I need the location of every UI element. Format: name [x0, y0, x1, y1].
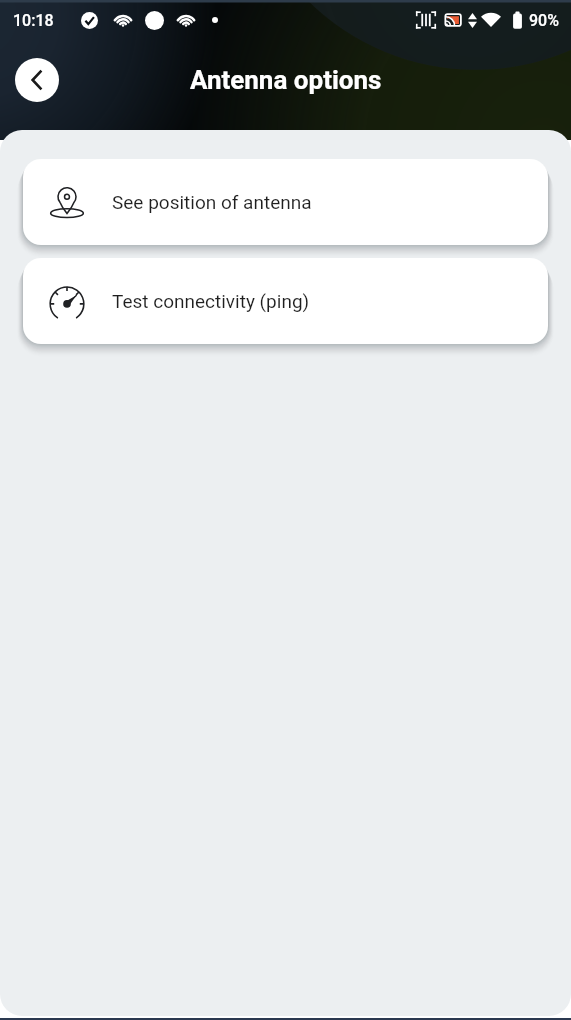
button[interactable]: Test connectivity (ping) [23, 258, 548, 344]
button[interactable]: See position of antenna [23, 159, 548, 245]
staticText: See position of antenna [112, 191, 312, 213]
staticText: Antenna options [190, 65, 382, 95]
staticText: Test connectivity (ping) [112, 290, 310, 312]
button[interactable]: Back [15, 58, 59, 102]
staticText: 90% [529, 11, 559, 30]
staticText: 10:18 [13, 11, 54, 30]
